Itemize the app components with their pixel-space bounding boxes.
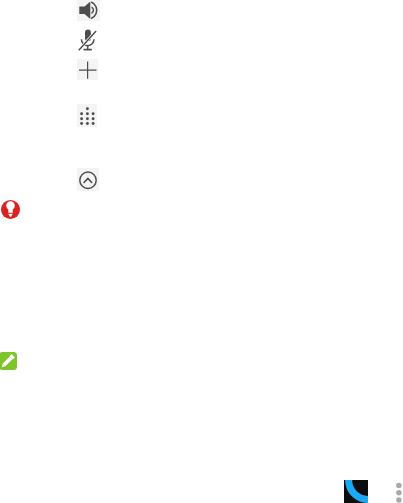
button[interactable]: Dialpad [77, 104, 97, 127]
button[interactable]: Opera [1, 200, 20, 219]
button[interactable]: Add call [77, 59, 98, 80]
button[interactable]: Phone [344, 480, 368, 503]
button[interactable]: Expand [77, 168, 99, 191]
button[interactable]: More options [392, 479, 403, 503]
button[interactable]: Mute [77, 28, 99, 52]
button[interactable]: Edit [0, 352, 17, 370]
button[interactable]: Speaker [77, 0, 100, 21]
